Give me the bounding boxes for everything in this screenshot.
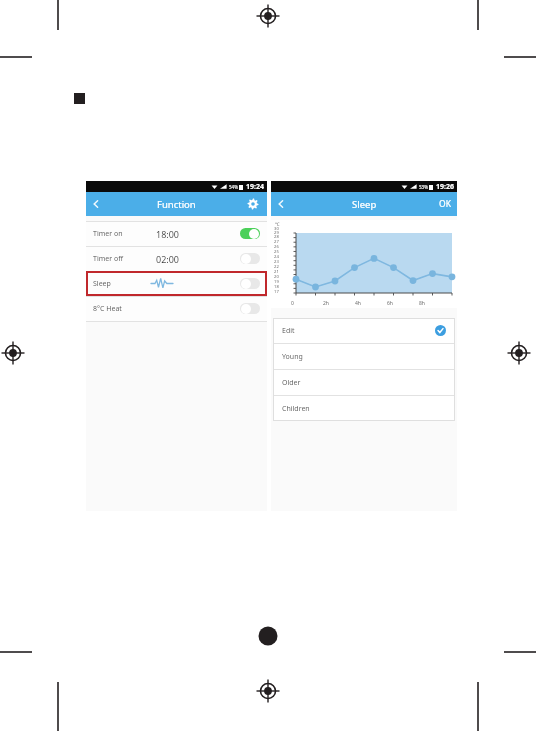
staticText: 17 xyxy=(274,289,279,294)
button[interactable]: Children xyxy=(273,396,455,421)
staticText: Sleep xyxy=(93,279,111,289)
staticText: 25 xyxy=(274,249,279,254)
staticText: 28 xyxy=(274,234,279,239)
staticText: Timer on xyxy=(93,229,123,239)
staticText: 22 xyxy=(274,264,279,269)
staticText: Timer off xyxy=(93,254,123,264)
staticText: 18:00 xyxy=(156,228,180,240)
staticText: 8h xyxy=(419,300,425,307)
staticText: OK xyxy=(439,198,451,210)
staticText: 21 xyxy=(274,269,279,274)
staticText: 54% xyxy=(229,184,238,190)
staticText: Edit xyxy=(282,326,295,336)
button[interactable]: OK xyxy=(439,198,451,210)
staticText: Older xyxy=(282,378,301,388)
button[interactable]: Timer off xyxy=(86,246,267,271)
button[interactable]: Back xyxy=(271,194,291,214)
button[interactable]: Off xyxy=(240,253,260,264)
button[interactable]: Off xyxy=(240,278,260,289)
button[interactable]: Back xyxy=(86,194,106,214)
staticText: 2h xyxy=(323,300,329,307)
staticText: 20 xyxy=(274,274,279,279)
staticText: Function xyxy=(157,198,196,211)
button[interactable]: Off xyxy=(240,303,260,314)
button[interactable]: 8°C Heat xyxy=(86,296,267,321)
button[interactable]: Edit xyxy=(273,318,455,343)
button[interactable]: Timer on xyxy=(86,221,267,246)
staticText: 19:24 xyxy=(246,182,264,192)
staticText: 4h xyxy=(355,300,361,307)
staticText: Young xyxy=(282,352,303,362)
staticText: 19:26 xyxy=(436,182,454,192)
staticText: ℃ xyxy=(275,221,280,227)
staticText: Children xyxy=(282,404,310,414)
staticText: 19 xyxy=(274,279,279,284)
button[interactable]: Young xyxy=(273,344,455,369)
staticText: 18 xyxy=(274,284,279,289)
staticText: 26 xyxy=(274,244,279,249)
staticText: 24 xyxy=(274,254,279,259)
button[interactable]: Older xyxy=(273,370,455,395)
staticText: 27 xyxy=(274,239,279,244)
button[interactable]: On xyxy=(240,228,260,239)
staticText: 02:00 xyxy=(156,253,180,265)
staticText: 8°C Heat xyxy=(93,304,122,314)
button[interactable]: Settings xyxy=(245,196,261,212)
staticText: 53% xyxy=(419,184,428,190)
button[interactable]: Sleep xyxy=(86,271,267,296)
staticText: 23 xyxy=(274,259,279,264)
staticText: 29 xyxy=(274,230,279,234)
staticText: Sleep xyxy=(352,198,377,211)
staticText: 30 xyxy=(274,226,279,230)
staticText: 6h xyxy=(387,300,393,307)
staticText: 0 xyxy=(291,300,294,307)
